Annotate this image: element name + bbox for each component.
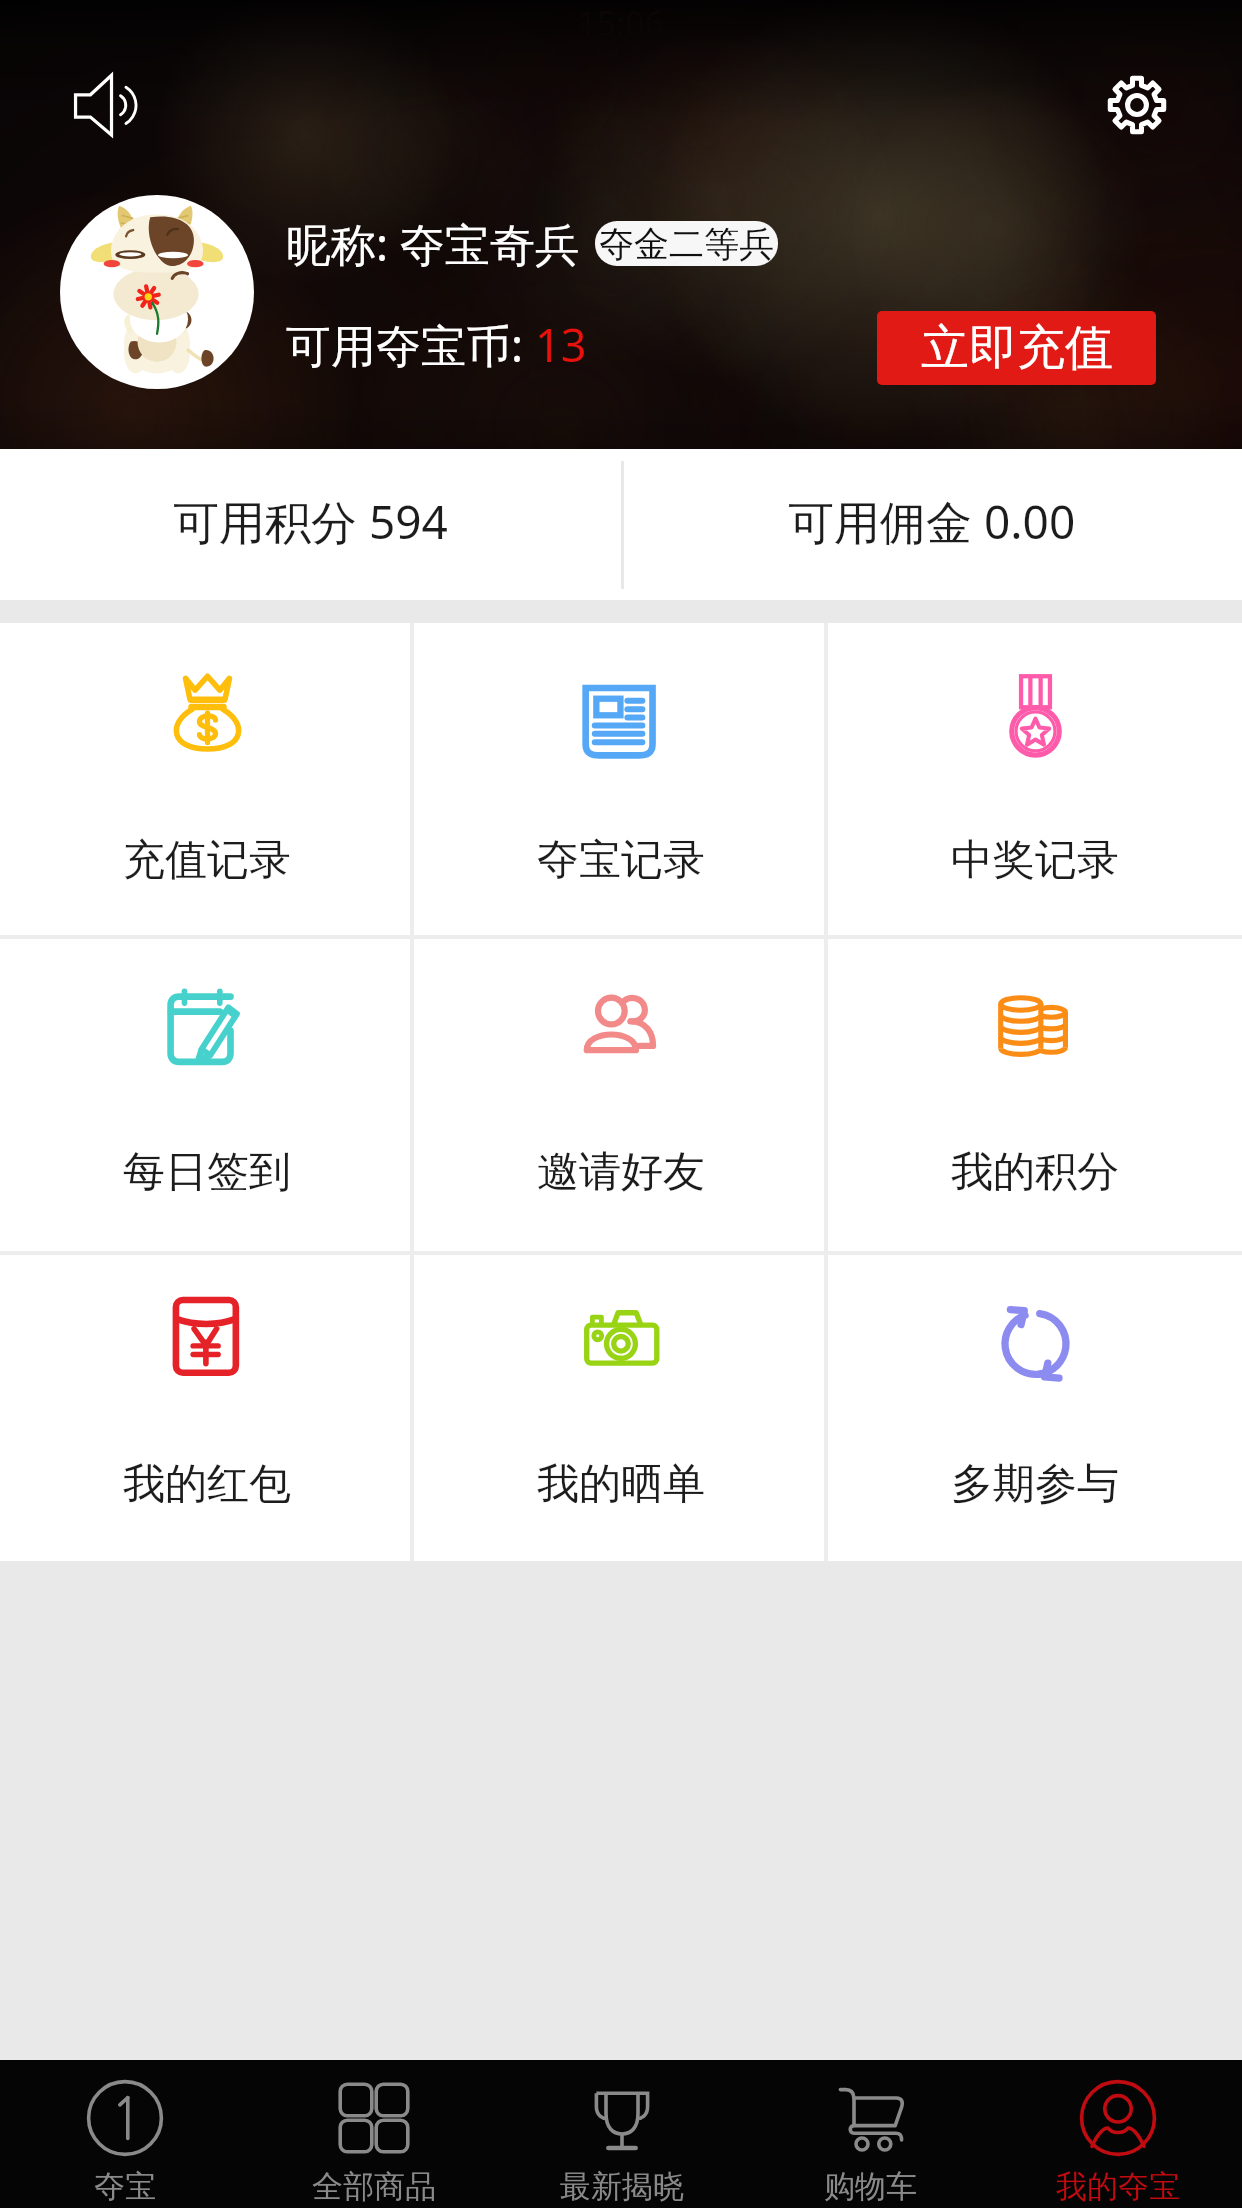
button[interactable]: 可用佣金 0.00 <box>621 449 1242 600</box>
button[interactable]: 每日签到 <box>0 939 414 1251</box>
staticText: 我的晒单 <box>537 1458 705 1511</box>
staticText: 充值记录 <box>123 834 291 887</box>
staticText: 可用佣金 0.00 <box>788 490 1076 553</box>
button[interactable]: 我的夺宝 <box>994 2060 1242 2208</box>
staticText: 13 <box>535 314 587 375</box>
staticText: 全部商品 <box>312 2167 436 2206</box>
staticText: 最新揭晓 <box>560 2167 684 2206</box>
staticText: 昵称: 夺宝奇兵 <box>286 213 580 274</box>
staticText: 我的夺宝 <box>1056 2167 1180 2206</box>
staticText: 购物车 <box>824 2167 917 2206</box>
button[interactable]: 中奖记录 <box>828 623 1242 935</box>
button[interactable]: 充值记录 <box>0 623 414 935</box>
staticText: 立即充值 <box>921 318 1113 378</box>
button[interactable]: 我的积分 <box>828 939 1242 1251</box>
staticText: 中奖记录 <box>951 834 1119 887</box>
button[interactable]: 邀请好友 <box>414 939 828 1251</box>
staticText: 夺宝记录 <box>537 834 705 887</box>
button[interactable]: 全部商品 <box>249 2060 498 2208</box>
button[interactable]: 夺宝 <box>0 2060 249 2208</box>
staticText: 多期参与 <box>951 1458 1119 1511</box>
button[interactable]: 我的红包 <box>0 1255 414 1561</box>
staticText: 可用夺宝币: <box>286 314 535 375</box>
button[interactable] <box>60 195 254 389</box>
button[interactable]: 立即充值 <box>877 311 1156 385</box>
button[interactable]: Sound <box>42 42 168 168</box>
button[interactable]: 最新揭晓 <box>498 2060 746 2208</box>
button[interactable]: Settings <box>1074 42 1199 167</box>
staticText: 我的红包 <box>123 1458 291 1511</box>
staticText: 每日签到 <box>123 1146 291 1199</box>
staticText: 夺宝 <box>94 2167 156 2206</box>
staticText: 可用积分 594 <box>173 490 448 553</box>
button[interactable]: 我的晒单 <box>414 1255 828 1561</box>
staticText: 夺金二等兵 <box>599 222 774 266</box>
staticText: 我的积分 <box>951 1146 1119 1199</box>
button[interactable]: 可用积分 594 <box>0 449 621 600</box>
button[interactable]: 夺宝记录 <box>414 623 828 935</box>
button[interactable]: 购物车 <box>746 2060 994 2208</box>
staticText: 邀请好友 <box>537 1146 705 1199</box>
button[interactable]: 多期参与 <box>828 1255 1242 1561</box>
